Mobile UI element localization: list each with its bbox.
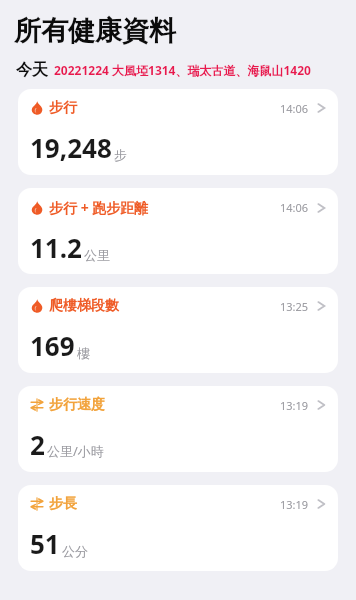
staticText: 今天 [16, 60, 48, 80]
other: Open details [317, 497, 326, 511]
button[interactable]: 步行 + 跑步距離 [18, 188, 338, 274]
staticText: 13:19 [280, 398, 309, 413]
other: Open details [317, 201, 326, 215]
staticText: 169 [30, 328, 75, 363]
staticText: 公里/小時 [47, 442, 104, 460]
staticText: 步長 [49, 495, 77, 513]
other: Open details [317, 398, 326, 412]
staticText: 11.2 [30, 230, 82, 265]
button[interactable]: 爬樓梯段數 [18, 287, 338, 373]
staticText: 步行 [49, 99, 77, 117]
staticText: 步行速度 [49, 396, 105, 414]
staticText: 2 [30, 427, 45, 462]
staticText: 14:06 [280, 101, 309, 116]
staticText: 公里 [84, 247, 110, 263]
button[interactable]: 步行 [18, 89, 338, 175]
staticText: 51 [30, 526, 60, 561]
staticText: 13:25 [280, 299, 309, 314]
staticText: 13:19 [280, 497, 309, 512]
button[interactable]: 步行速度 [18, 386, 338, 472]
staticText: 樓 [77, 345, 90, 361]
staticText: 19,248 [30, 130, 112, 165]
staticText: 步行 + 跑步距離 [49, 198, 149, 217]
staticText: 步 [114, 147, 127, 163]
other: Open details [317, 101, 326, 115]
staticText: 14:06 [280, 200, 309, 215]
staticText: 所有健康資料 [14, 14, 176, 48]
staticText: 20221224 大風埡1314、瑞太古道、海鼠山1420 [54, 62, 311, 78]
staticText: 公分 [62, 543, 88, 559]
other: Open details [317, 299, 326, 313]
staticText: 爬樓梯段數 [49, 297, 119, 315]
button[interactable]: 步長 [18, 485, 338, 571]
